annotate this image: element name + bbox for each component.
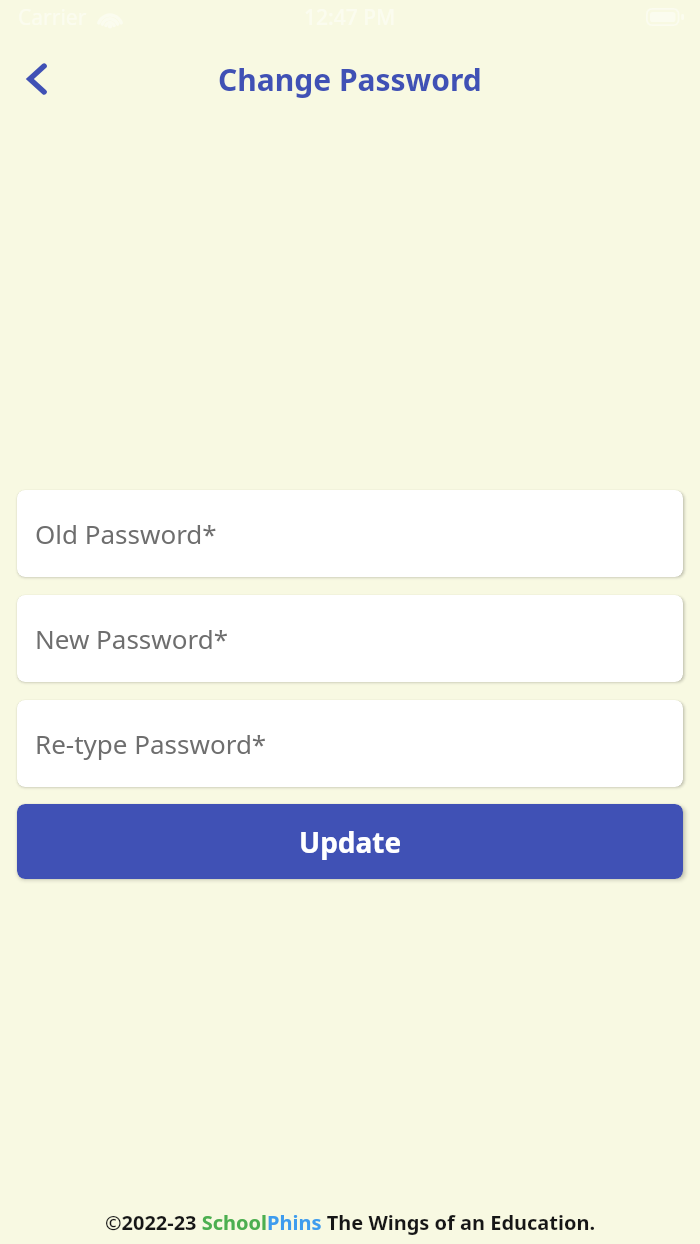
button[interactable]: Re-type Password* <box>17 700 683 787</box>
button[interactable]: New Password* <box>17 595 683 682</box>
staticText: Update <box>299 823 402 861</box>
staticText: New Password* <box>35 621 229 656</box>
staticText: Change Password <box>218 59 482 100</box>
staticText: ©2022-23 SchoolPhins The Wings of an Edu… <box>0 1209 700 1236</box>
button[interactable]: Old Password* <box>17 490 683 577</box>
button[interactable]: Update <box>17 804 683 879</box>
staticText: Old Password* <box>35 516 217 551</box>
button[interactable]: Back <box>8 49 68 109</box>
staticText: Re-type Password* <box>35 726 267 761</box>
staticText: Carrier <box>18 3 87 32</box>
staticText: 12:47 PM <box>304 3 396 32</box>
